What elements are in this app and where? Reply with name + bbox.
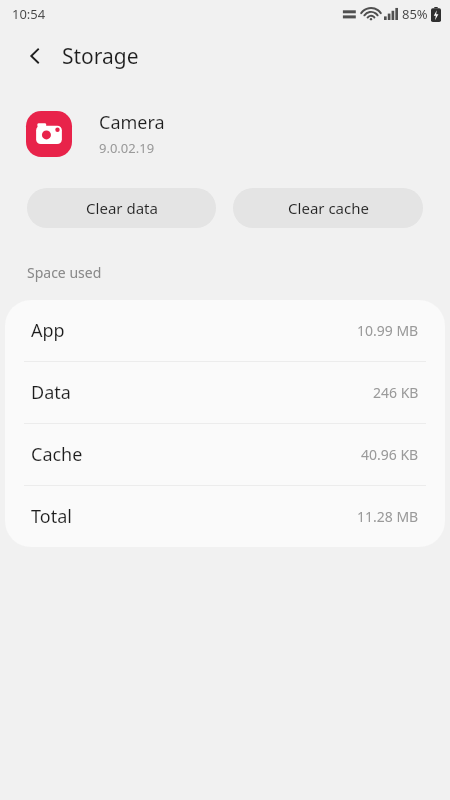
button[interactable]: Back: [14, 35, 56, 77]
staticText: Space used: [27, 263, 102, 282]
staticText: Camera: [99, 110, 165, 135]
button[interactable]: Clear data: [27, 188, 216, 228]
staticText: 9.0.02.19: [99, 139, 155, 157]
staticText: App: [31, 318, 65, 343]
staticText: 40.96 KB: [361, 445, 419, 464]
staticText: Cache: [31, 442, 83, 467]
staticText: 246 KB: [373, 383, 419, 402]
staticText: Storage: [62, 42, 139, 71]
staticText: 85%: [402, 5, 428, 23]
staticText: 10.99 MB: [357, 321, 419, 340]
button[interactable]: Cache: [5, 424, 445, 485]
button[interactable]: App: [5, 300, 445, 361]
staticText: Data: [31, 380, 71, 405]
staticText: Clear cache: [288, 198, 369, 218]
button[interactable]: Data: [5, 362, 445, 423]
button[interactable]: Clear cache: [233, 188, 423, 228]
staticText: Total: [31, 504, 72, 529]
staticText: Clear data: [86, 198, 158, 218]
staticText: 10:54: [12, 5, 46, 23]
button[interactable]: Total: [5, 486, 445, 547]
staticText: 11.28 MB: [357, 507, 419, 526]
